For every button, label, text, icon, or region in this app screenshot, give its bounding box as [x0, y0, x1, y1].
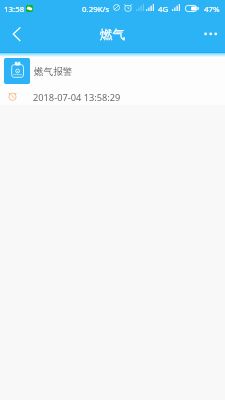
- staticText: 燃气: [0, 27, 225, 43]
- button[interactable]: Back: [6, 18, 34, 46]
- button[interactable]: 燃气报警: [0, 53, 225, 105]
- staticText: 47%: [204, 4, 220, 15]
- button[interactable]: More options: [198, 22, 222, 46]
- staticText: 0.29K/s: [82, 4, 110, 15]
- staticText: 2018-07-04 13:58:29: [33, 91, 121, 104]
- staticText: 燃气报警: [34, 66, 73, 78]
- staticText: 13:58: [4, 4, 25, 15]
- staticText: 4G: [158, 4, 169, 15]
